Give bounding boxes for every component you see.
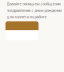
staticText: для коллеги по работе	[6, 14, 46, 19]
staticText: поздравление с днем рождения	[6, 7, 61, 13]
staticText: Давайте напишем сообщения	[6, 1, 60, 6]
